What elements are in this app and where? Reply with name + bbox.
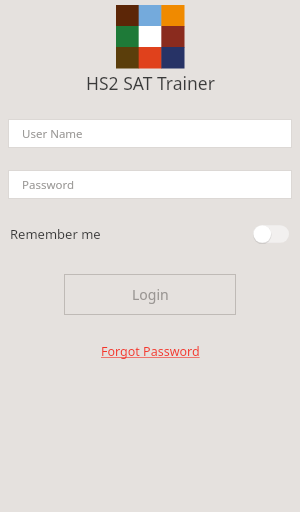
staticText: HS2 SAT Trainer <box>86 71 215 95</box>
button[interactable]: Login <box>64 274 236 315</box>
staticText: Remember me <box>10 225 101 243</box>
staticText: Forgot Password <box>101 343 200 360</box>
button[interactable]: Password <box>8 170 292 199</box>
button[interactable]: Forgot Password <box>95 341 206 362</box>
staticText: Password <box>22 177 75 193</box>
staticText: Login <box>132 285 169 304</box>
button[interactable]: User Name <box>8 119 292 148</box>
button[interactable]: Remember me toggle <box>253 223 289 245</box>
staticText: User Name <box>22 126 83 142</box>
